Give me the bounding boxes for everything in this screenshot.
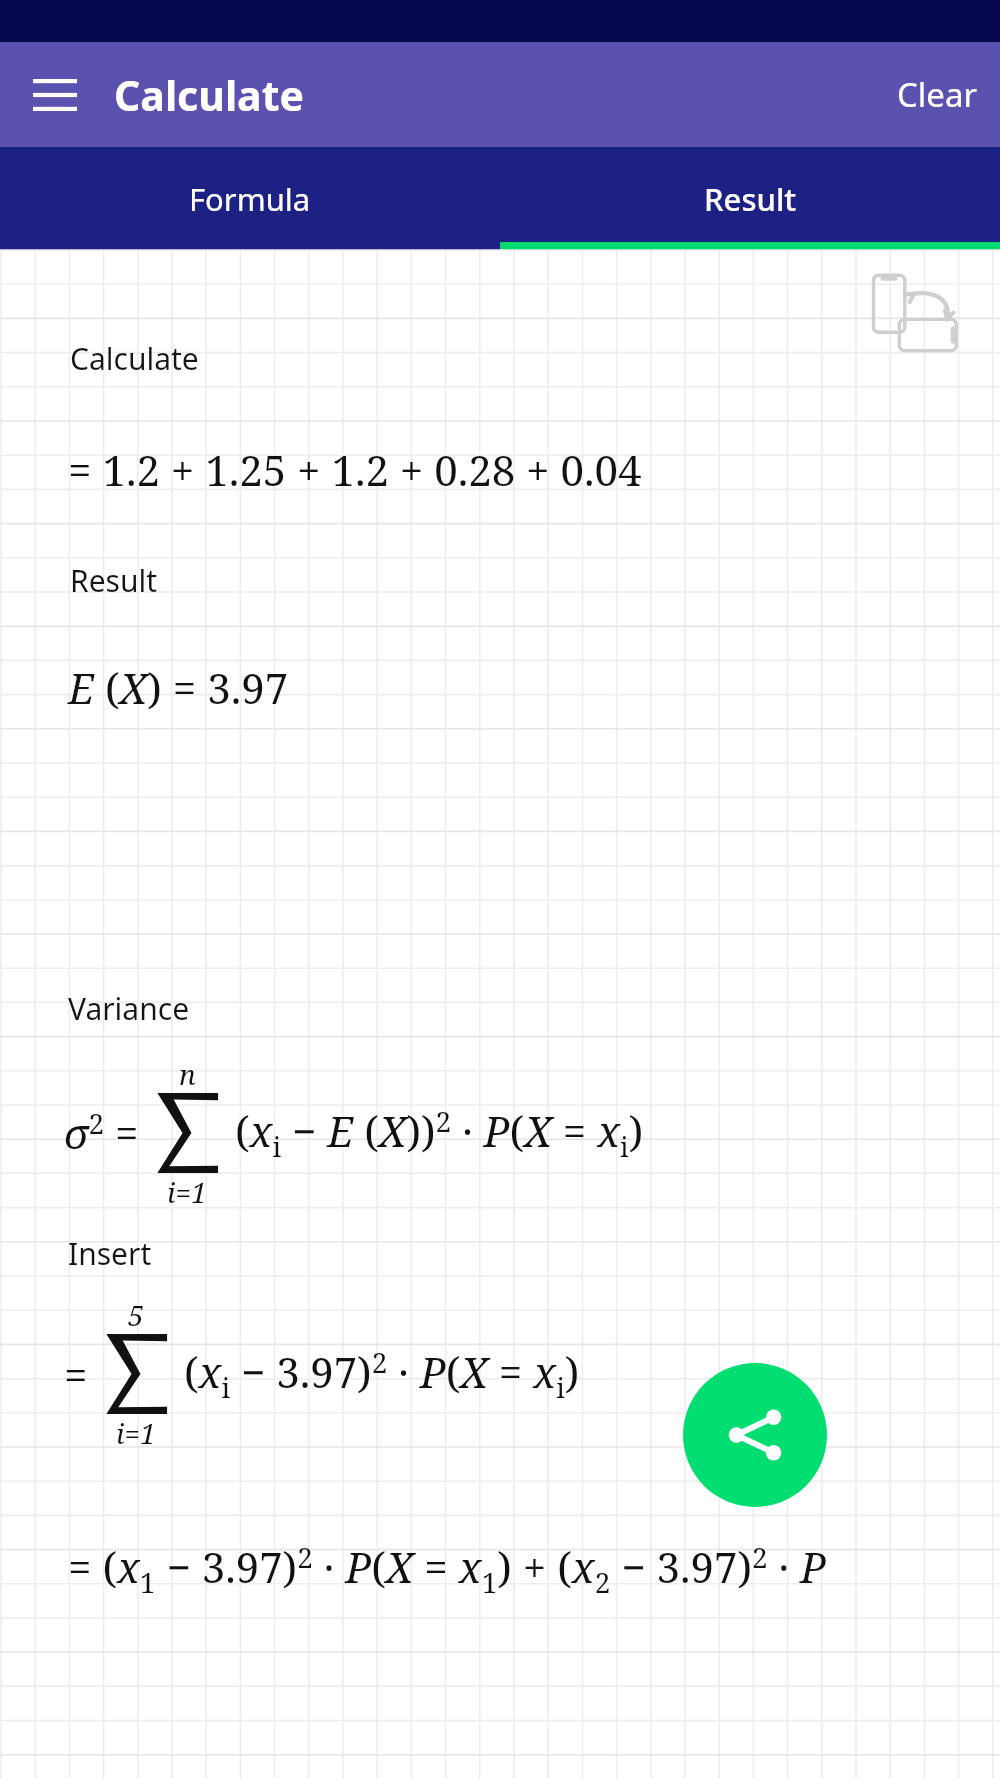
staticText: i=1 (167, 1173, 207, 1211)
staticText: Calculate (70, 338, 199, 379)
staticText: (xi − 3.97)2 · P(X = xi) (173, 1343, 580, 1406)
staticText: i=1 (116, 1414, 156, 1452)
staticText: σ2 = (64, 1104, 150, 1162)
other: Rotate device (868, 266, 960, 358)
button[interactable]: Result (500, 147, 1000, 250)
staticText: n (179, 1055, 196, 1093)
staticText: = (64, 1346, 99, 1403)
staticText: Result (704, 178, 797, 220)
button[interactable]: Clear (875, 56, 1000, 133)
staticText: Calculate (114, 67, 304, 123)
staticText: 5 (128, 1296, 144, 1334)
staticText: E (X) = 3.97 (68, 659, 289, 716)
button[interactable]: Menu (18, 58, 92, 132)
button[interactable]: Share (683, 1363, 827, 1507)
button[interactable]: Formula (0, 147, 500, 250)
staticText: Variance (68, 988, 190, 1029)
staticText: = (x1 − 3.97)2 · P(X = x1) + (x2 − 3.97)… (68, 1538, 826, 1601)
staticText: (xi − E (X))2 · P(X = xi) (224, 1102, 644, 1165)
staticText: Insert (68, 1233, 152, 1274)
staticText: = 1.2 + 1.25 + 1.2 + 0.28 + 0.04 (68, 441, 642, 498)
staticText: Clear (897, 72, 978, 117)
staticText: Result (70, 560, 158, 601)
staticText: Formula (189, 178, 311, 220)
